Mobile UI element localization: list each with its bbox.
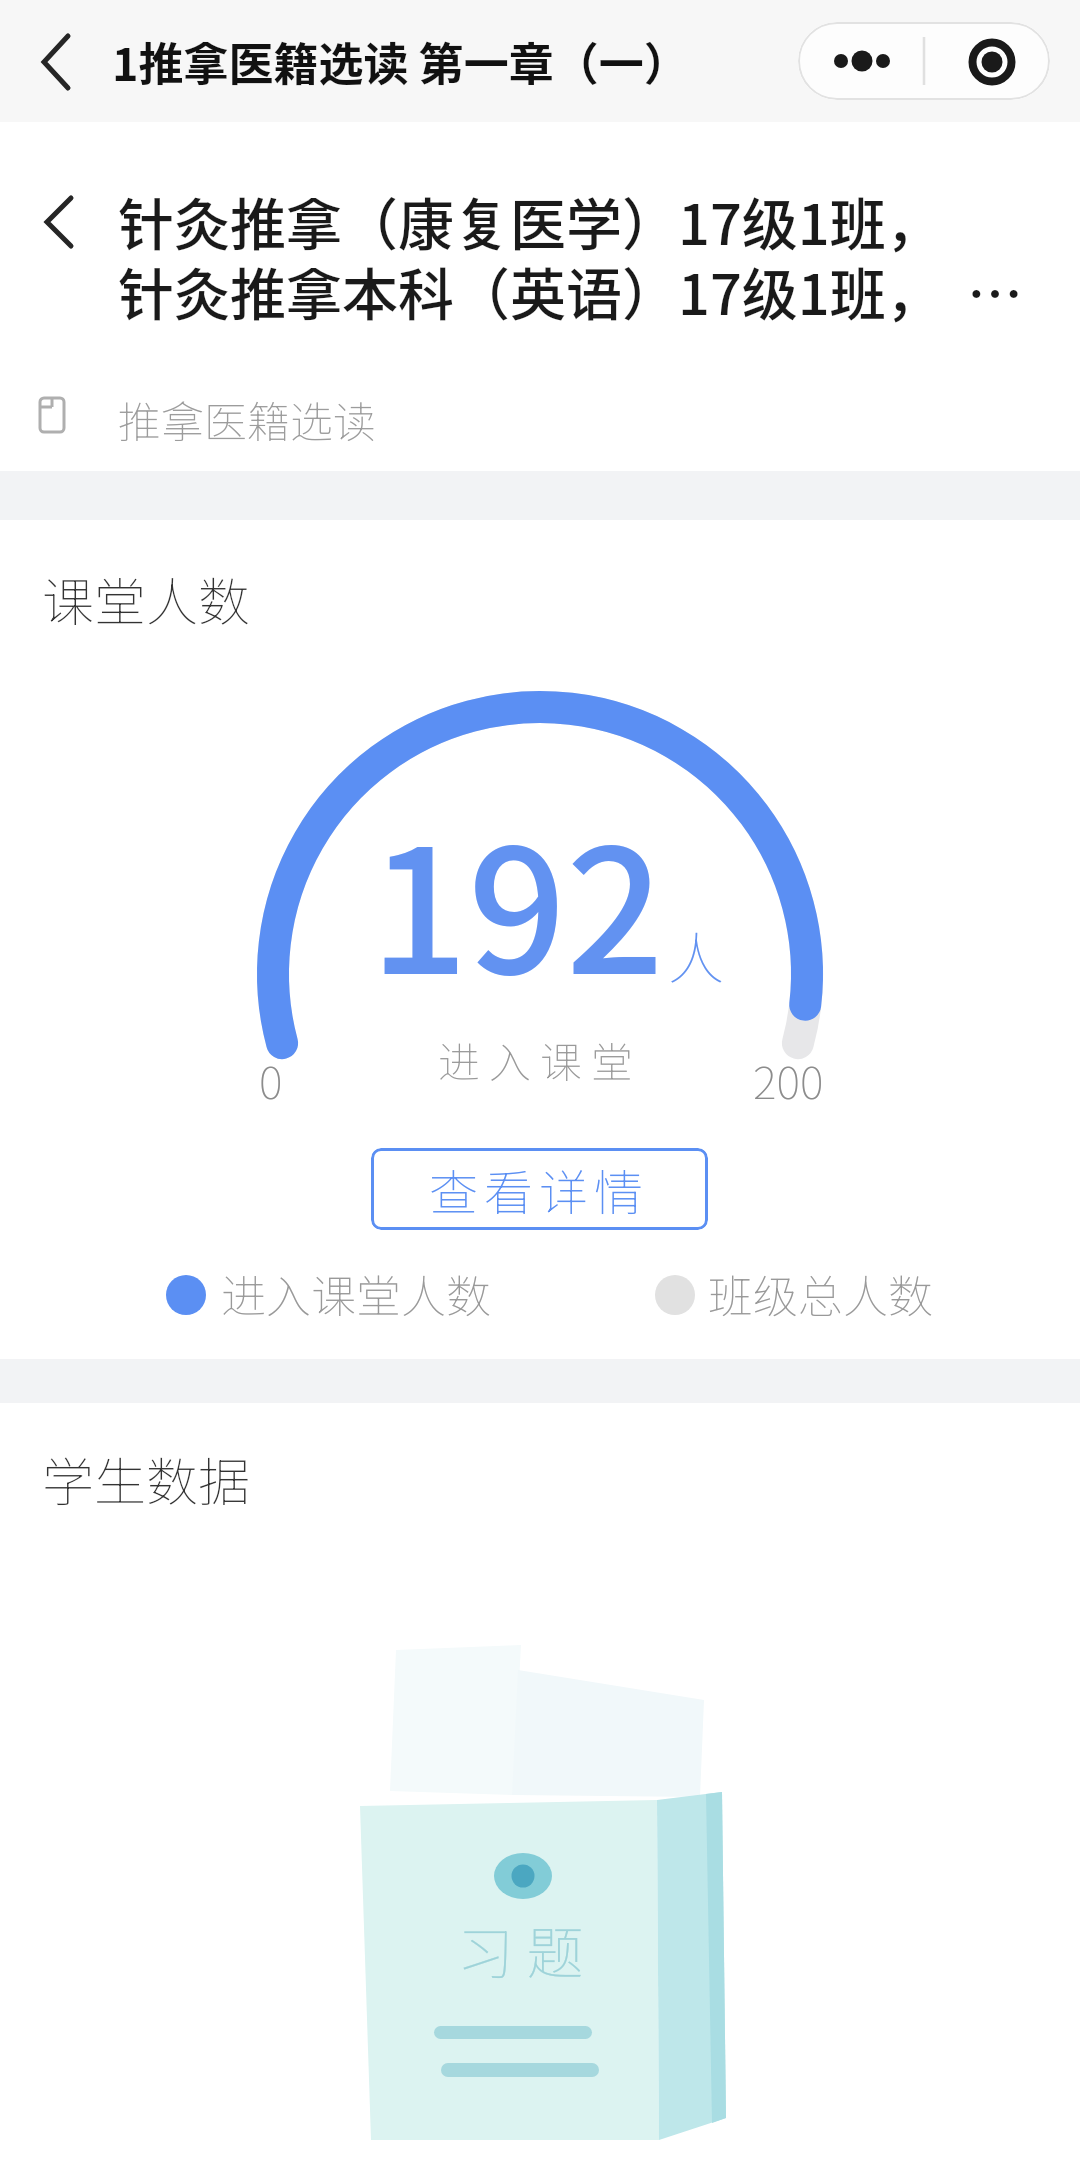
staticText: 习 题 xyxy=(457,1908,584,1991)
staticText: 推拿医籍选读 xyxy=(118,388,376,450)
staticText: 进入课堂 xyxy=(438,1029,643,1090)
staticText: 1推拿医籍选读 第一章（一） xyxy=(112,29,689,94)
staticText: 查看详情 xyxy=(429,1154,650,1225)
staticText: 学生数据 xyxy=(42,1441,251,1516)
staticText: 进入课堂人数 xyxy=(221,1261,492,1326)
staticText: 0 xyxy=(259,1047,283,1112)
staticText: 200 xyxy=(753,1047,824,1112)
staticText: 针灸推拿（康复医学）17级1班， 针灸推拿本科（英语）17级1班， … xyxy=(118,180,1058,331)
staticText: 班级总人数 xyxy=(708,1261,934,1326)
staticText: 课堂人数 xyxy=(42,561,251,636)
button[interactable]: 查看详情 xyxy=(371,1148,708,1230)
staticText: 人 xyxy=(668,914,724,995)
button[interactable] xyxy=(40,196,80,248)
staticText: 192 xyxy=(370,774,665,1023)
button[interactable] xyxy=(798,22,1050,100)
button[interactable] xyxy=(36,34,76,90)
